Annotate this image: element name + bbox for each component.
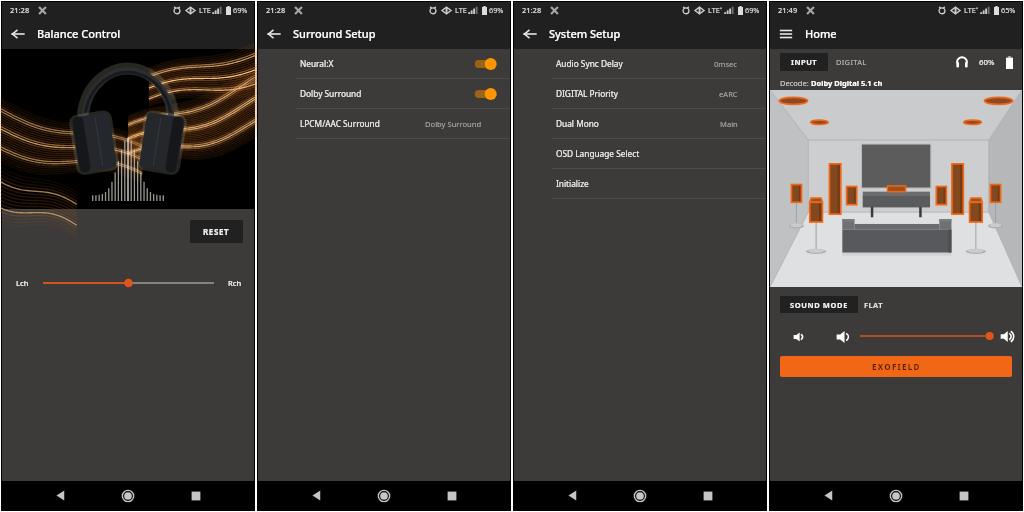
staticText: LPCM/AAC Surround [300,118,380,129]
staticText: Decode: [780,78,811,88]
button[interactable]: Home [350,481,418,510]
staticText: Lch [16,278,29,288]
staticText: Dolby Digital 5.1 ch [811,78,883,88]
button[interactable]: EXOFIELD [780,356,1012,377]
button[interactable]: Back [2,18,33,49]
button[interactable]: Dolby Surround [258,79,510,108]
staticText: 21:49 [778,5,798,15]
staticText: DIGITAL Priority [556,88,618,99]
button[interactable]: Back [538,481,606,510]
staticText: Neural:X [300,58,334,69]
staticText: Dual Mono [556,118,599,129]
staticText: LTE [199,5,211,15]
staticText: 21:28 [10,5,30,15]
button[interactable]: Neural:X [258,49,510,78]
button[interactable]: Menu [770,18,801,49]
staticText: 0msec [714,59,738,69]
button[interactable]: Recents [418,481,486,510]
button[interactable]: DIGITAL [836,57,867,67]
button[interactable]: SOUND MODE [780,296,858,313]
staticText: RESET [203,226,230,237]
staticText: Audio Sync Delay [556,58,623,69]
button[interactable]: Volume down [792,328,809,345]
button[interactable]: Balance slider [43,272,214,294]
button[interactable]: Home [94,481,162,510]
staticText: eARC [719,89,738,99]
button[interactable]: Initialize [514,169,766,198]
staticText: INPUT [791,57,818,67]
staticText: Balance Control [37,26,121,41]
staticText: EXOFIELD [872,361,921,372]
staticText: LTE [455,5,467,15]
staticText: 21:28 [522,5,542,15]
staticText: LTE⁺ [708,5,723,15]
button[interactable]: Home [606,481,674,510]
staticText: 21:28 [266,5,286,15]
button[interactable]: Home [862,481,930,510]
staticText: Initialize [556,178,589,189]
button[interactable]: INPUT [780,53,828,71]
staticText: LTE⁺ [964,5,979,15]
staticText: 60% [979,57,995,68]
button[interactable]: Back [258,18,289,49]
button[interactable]: Back [514,18,545,49]
button[interactable]: Recents [162,481,230,510]
button[interactable]: Mute [835,328,852,345]
staticText: SOUND MODE [790,300,848,310]
button[interactable]: RESET [190,220,243,243]
staticText: Surround Setup [293,26,376,41]
button[interactable]: Back [794,481,862,510]
staticText: System Setup [549,26,621,41]
button[interactable]: Volume up [999,327,1017,345]
button[interactable]: FLAT [864,300,883,310]
button[interactable]: Audio Sync Delay [514,49,766,78]
button[interactable]: Dual Mono [514,109,766,138]
button[interactable]: Back [282,481,350,510]
button[interactable]: Recents [930,481,998,510]
button[interactable]: Volume slider [860,322,993,350]
staticText: Rch [228,278,242,288]
button[interactable]: Recents [674,481,742,510]
staticText: Home [805,26,837,41]
staticText: Dolby Surround [300,88,362,99]
button[interactable]: LPCM/AAC Surround [258,109,510,138]
button[interactable]: OSD Language Select [514,139,766,168]
staticText: OSD Language Select [556,148,640,159]
staticText: Dolby Surround [425,119,482,129]
staticText: 69% [233,5,248,15]
staticText: 65% [1001,5,1016,15]
button[interactable]: Back [26,481,94,510]
staticText: 69% [489,5,504,15]
staticText: 69% [745,5,760,15]
staticText: Main [720,119,738,129]
button[interactable]: DIGITAL Priority [514,79,766,108]
other: Headphones [956,56,968,69]
